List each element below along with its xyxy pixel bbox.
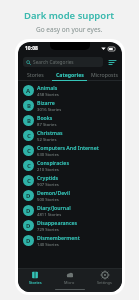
staticText: Stories: [29, 280, 42, 285]
staticText: Stories: [27, 71, 44, 78]
staticText: C: [27, 147, 31, 155]
button[interactable]: A: [18, 83, 122, 98]
staticText: Go easy on your eyes.: [36, 25, 103, 34]
staticText: Christmas: [37, 129, 63, 136]
button[interactable]: Microposts: [87, 68, 122, 80]
button[interactable]: Stories: [18, 68, 52, 80]
staticText: Dark mode support: [24, 9, 115, 22]
staticText: 458 Stories: [37, 92, 59, 98]
button[interactable]: Filter: [107, 57, 117, 67]
staticText: C: [27, 177, 31, 185]
button[interactable]: Micro: [52, 269, 87, 287]
staticText: 500 Stories: [37, 197, 59, 203]
staticText: D: [26, 207, 31, 215]
staticText: B: [27, 102, 31, 110]
staticText: Settings: [97, 280, 112, 285]
button[interactable]: Stories: [18, 269, 52, 287]
button[interactable]: Search Categories: [23, 57, 103, 67]
staticText: D: [26, 222, 31, 230]
staticText: Bizarre: [37, 99, 55, 106]
staticText: A: [26, 87, 31, 95]
button[interactable]: C: [18, 128, 122, 143]
button[interactable]: Settings: [87, 269, 122, 287]
staticText: B: [27, 117, 31, 125]
staticText: Microposts: [91, 71, 118, 78]
button[interactable]: Categories: [52, 68, 87, 80]
button[interactable]: C: [18, 173, 122, 188]
staticText: 3016 Stories: [37, 107, 62, 113]
button[interactable]: D: [18, 218, 122, 233]
staticText: 10:08: [25, 45, 38, 52]
staticText: 630 Stories: [37, 152, 59, 158]
staticText: Disappearances: [37, 219, 78, 226]
staticText: Micro: [64, 280, 75, 285]
staticText: Dismemberment: [37, 234, 80, 241]
staticText: 729 Stories: [37, 227, 59, 233]
button[interactable]: B: [18, 113, 122, 128]
staticText: Diary/Journal: [37, 204, 71, 211]
staticText: Search Categories: [33, 59, 74, 66]
staticText: C: [27, 162, 31, 170]
staticText: Animals: [37, 84, 58, 91]
button[interactable]: D: [18, 203, 122, 218]
button[interactable]: C: [18, 158, 122, 173]
staticText: 907 Stories: [37, 182, 59, 188]
staticText: Conspiracies: [37, 159, 69, 166]
button[interactable]: D: [18, 188, 122, 203]
staticText: 210 Stories: [37, 167, 59, 173]
staticText: Books: [37, 114, 53, 121]
staticText: 4811 Stories: [37, 212, 62, 218]
staticText: 87 Stories: [37, 122, 57, 128]
staticText: Computers And Internet: [37, 144, 99, 151]
button[interactable]: C: [18, 143, 122, 158]
staticText: D: [26, 192, 31, 200]
staticText: C: [27, 132, 31, 140]
staticText: Demon/Devil: [37, 189, 70, 196]
staticText: Categories: [56, 71, 84, 78]
button[interactable]: B: [18, 98, 122, 113]
staticText: Cryptids: [37, 174, 59, 181]
staticText: 52 Stories: [37, 137, 57, 143]
button[interactable]: D: [18, 233, 122, 248]
staticText: 140 Stories: [37, 242, 59, 248]
staticText: D: [26, 237, 31, 245]
